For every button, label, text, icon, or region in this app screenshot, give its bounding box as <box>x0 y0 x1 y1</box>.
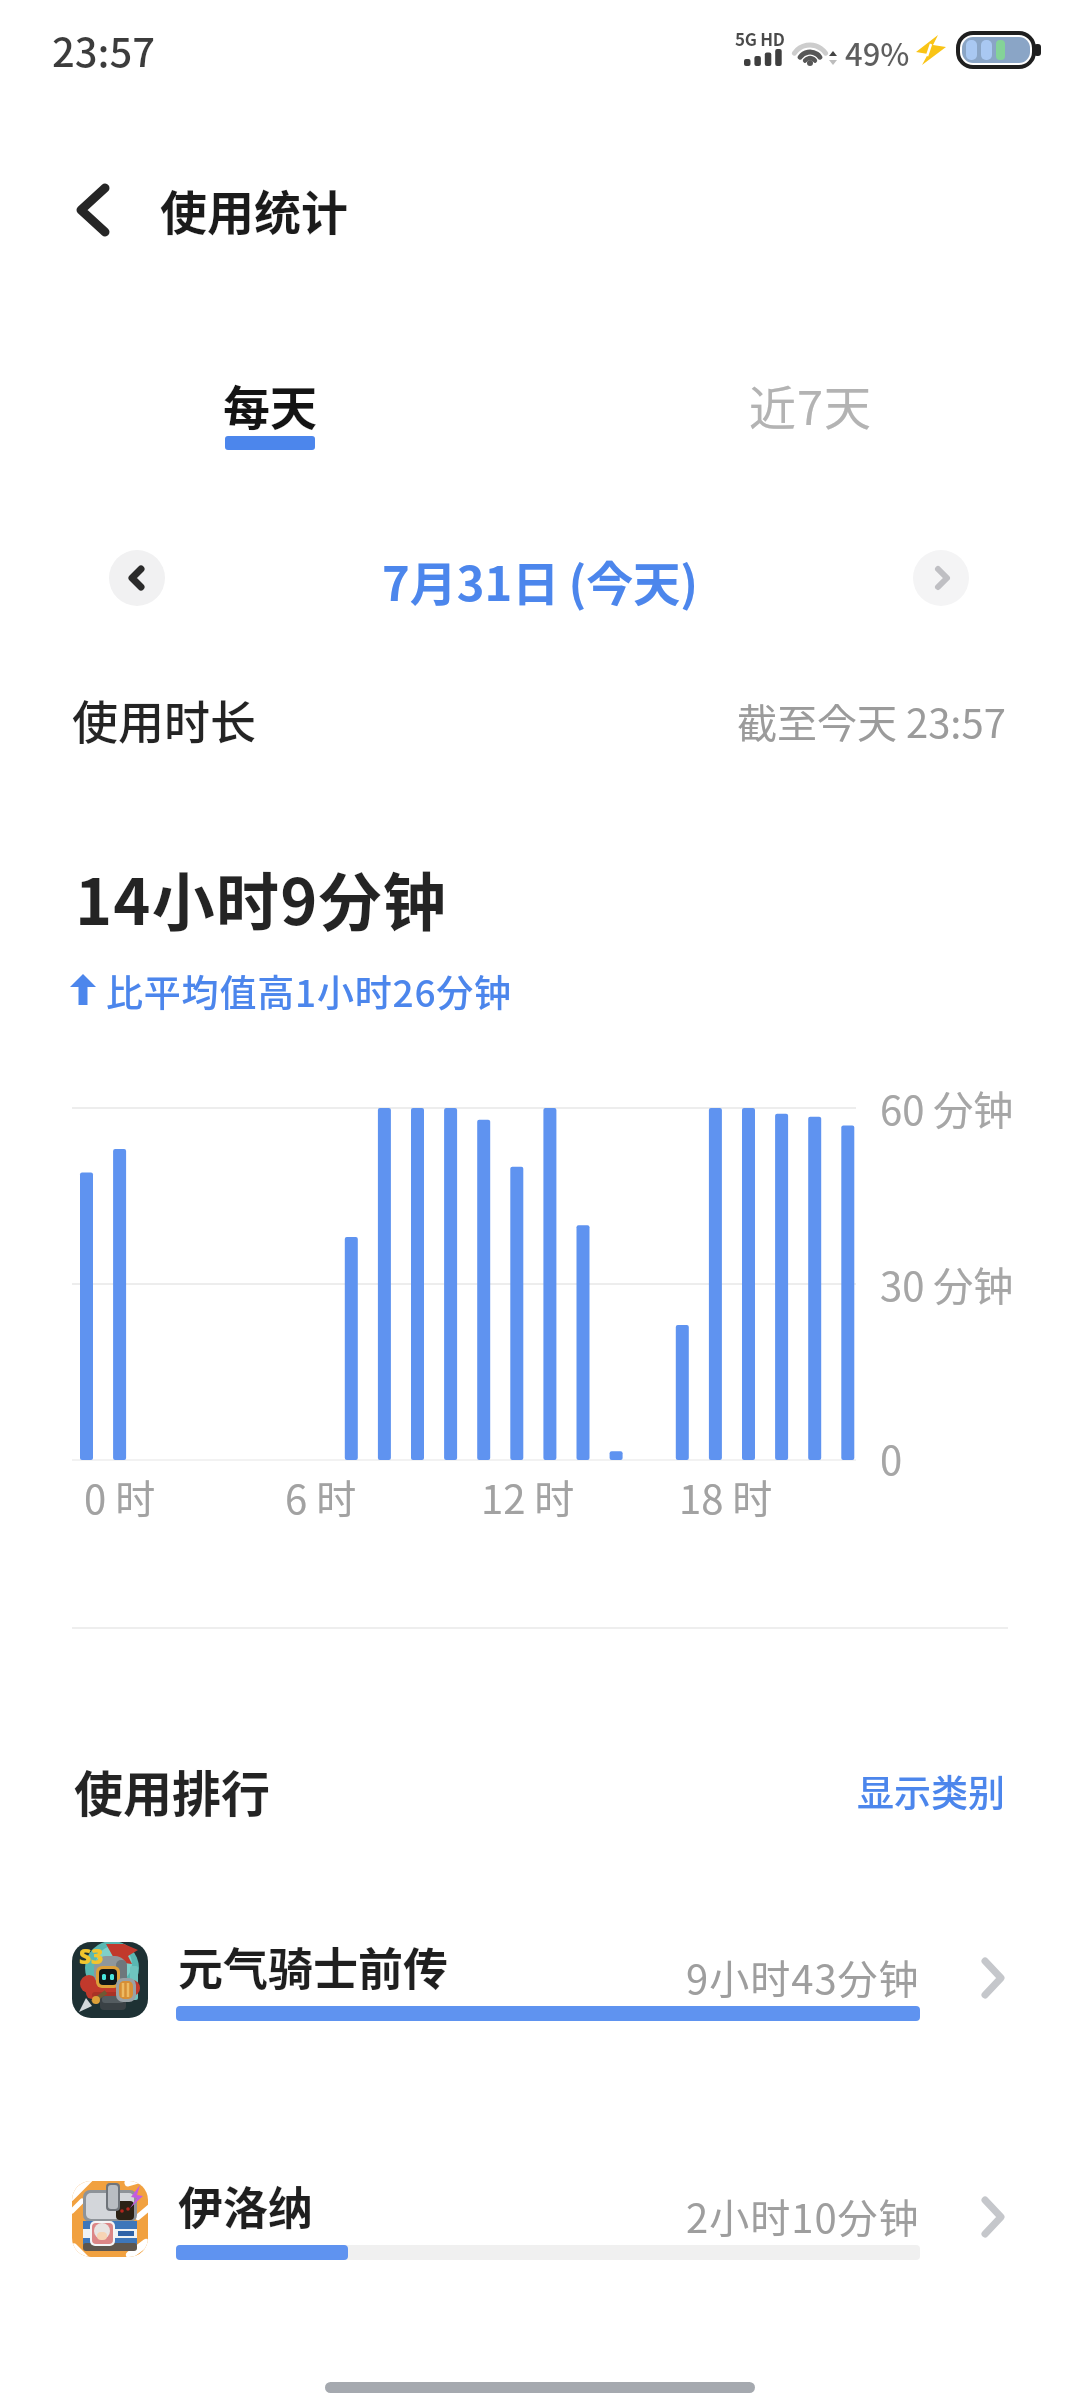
staticText: 7月31日 (今天) <box>382 546 699 614</box>
staticText: 元气骑士前传 <box>178 1934 449 1999</box>
button[interactable] <box>52 170 142 250</box>
staticText: 每天 <box>223 370 317 438</box>
staticText: 49% <box>845 30 910 75</box>
staticText: 5G HD <box>735 26 785 51</box>
staticText: 12 时 <box>481 1468 575 1526</box>
staticText: 0 时 <box>84 1468 156 1526</box>
staticText: 截至今天 23:57 <box>737 692 1006 750</box>
staticText: 使用时长 <box>72 686 256 753</box>
staticText: 60 分钟 <box>880 1079 1014 1137</box>
button[interactable] <box>913 550 969 606</box>
staticText: 显示类别 <box>857 1764 1005 1818</box>
button[interactable] <box>720 365 900 465</box>
button[interactable] <box>40 1912 1040 2052</box>
staticText: 2小时10分钟 <box>686 2187 920 2245</box>
staticText: 18 时 <box>679 1468 773 1526</box>
staticText: S3 <box>79 1942 104 1971</box>
button[interactable] <box>40 2151 1040 2291</box>
staticText: 0 <box>880 1429 903 1487</box>
staticText: 比平均值高1小时26分钟 <box>106 964 512 1018</box>
staticText: 6 时 <box>285 1468 357 1526</box>
button[interactable] <box>109 550 165 606</box>
staticText: 14小时9分钟 <box>75 852 447 943</box>
staticText: 23:57 <box>52 21 156 79</box>
staticText: 近7天 <box>749 370 873 438</box>
staticText: 30 分钟 <box>880 1255 1014 1313</box>
staticText: 伊洛纳 <box>178 2173 314 2238</box>
staticText: 使用统计 <box>160 175 348 243</box>
staticText: 9小时43分钟 <box>686 1948 920 2006</box>
button[interactable] <box>840 1760 1010 1820</box>
button[interactable] <box>180 365 360 465</box>
staticText: 使用排行 <box>74 1755 271 1826</box>
